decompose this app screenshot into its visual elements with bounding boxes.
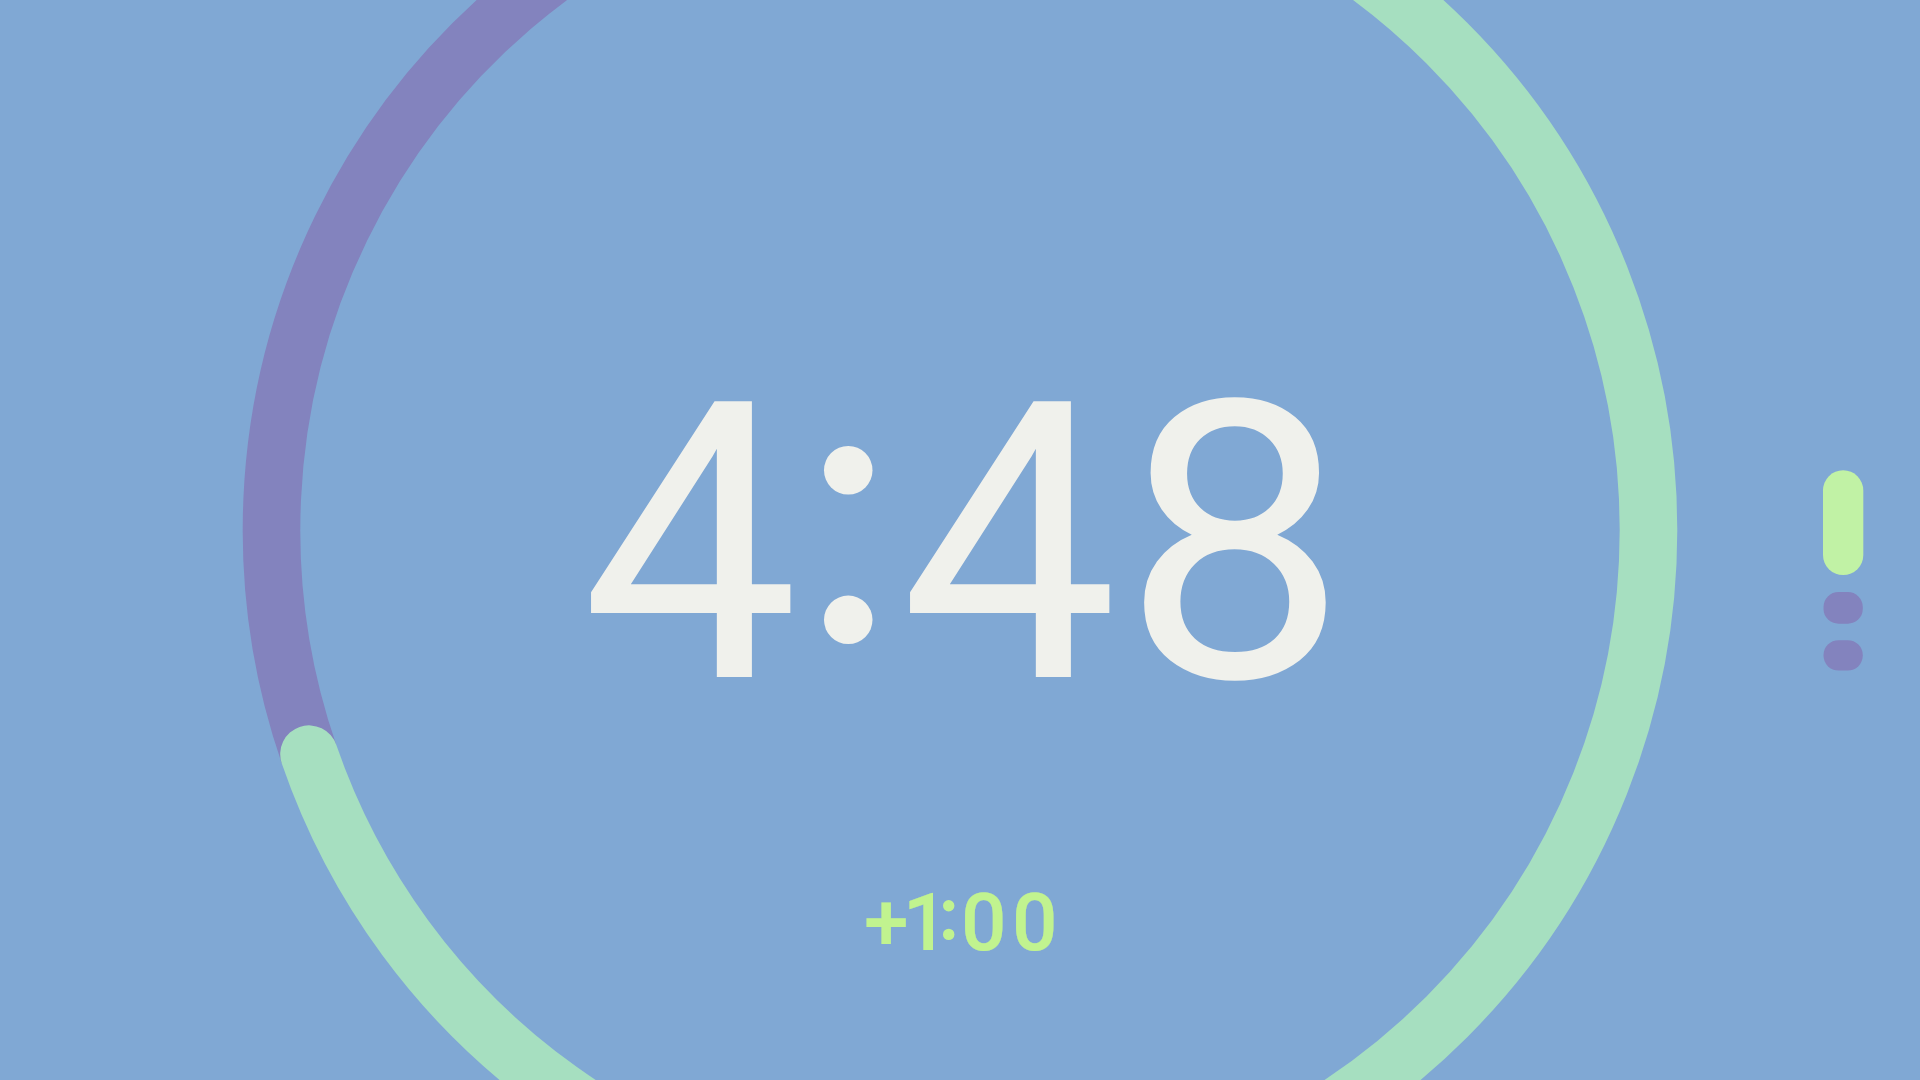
button[interactable]: Add one minute — [840, 858, 1084, 966]
staticText: 4 — [900, 317, 1119, 772]
staticText: 0 — [1012, 876, 1058, 970]
other: Page 1 of 3 — [1817, 458, 1869, 684]
staticText: + — [864, 876, 909, 970]
staticText: 1 — [903, 876, 949, 970]
staticText: 8 — [1122, 317, 1349, 772]
button[interactable]: Pause timer — [0, 0, 1920, 1080]
staticText: 4 — [581, 317, 800, 772]
staticText: 0 — [961, 876, 1007, 970]
